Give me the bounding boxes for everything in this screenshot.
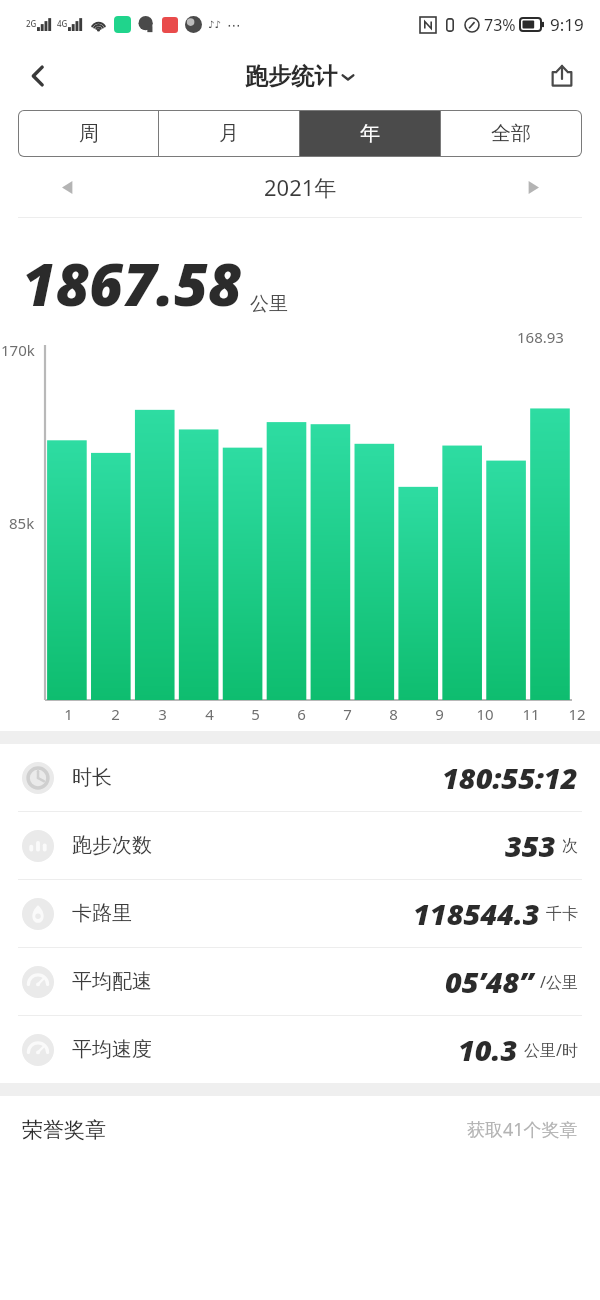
staticText: 月 xyxy=(219,121,239,146)
staticText: 获取41个奖章 xyxy=(467,1117,578,1142)
staticText: 11 xyxy=(522,704,540,724)
staticText: 10.3 xyxy=(458,1030,518,1069)
staticText: 3 xyxy=(158,704,167,724)
staticText: 4 xyxy=(205,704,214,724)
staticText: 1 xyxy=(64,704,73,724)
staticText: 118544.3 xyxy=(413,894,540,933)
button[interactable]: Previous year xyxy=(48,167,88,207)
button[interactable]: 平均速度 xyxy=(0,1016,600,1083)
staticText: 4G xyxy=(57,18,68,29)
staticText: 353 xyxy=(505,826,556,865)
staticText: 卡路里 xyxy=(72,901,132,926)
button[interactable]: 跑步统计 xyxy=(245,62,355,91)
button[interactable]: 时长 xyxy=(0,744,600,811)
staticText: 2 xyxy=(111,704,120,724)
button[interactable]: 平均配速 xyxy=(0,948,600,1015)
staticText: 168.93 xyxy=(517,327,564,347)
staticText: ⋯ xyxy=(227,17,241,33)
button[interactable]: Next year xyxy=(512,167,552,207)
button[interactable]: Share xyxy=(538,52,586,100)
staticText: 5 xyxy=(251,704,260,724)
staticText: /公里 xyxy=(540,971,578,993)
staticText: 12 xyxy=(568,704,586,724)
button[interactable]: 年 xyxy=(300,111,440,156)
button[interactable]: Back xyxy=(14,52,62,100)
staticText: 05’48” xyxy=(445,962,534,1001)
staticText: 1867.58 xyxy=(22,244,242,323)
staticText: 170k xyxy=(1,340,35,360)
staticText: 7 xyxy=(343,704,352,724)
staticText: 9 xyxy=(435,704,444,724)
button[interactable]: 全部 xyxy=(441,111,581,156)
button[interactable]: 卡路里 xyxy=(0,880,600,947)
staticText: 次 xyxy=(562,836,578,856)
button[interactable]: 月 xyxy=(159,111,299,156)
staticText: 6 xyxy=(297,704,306,724)
staticText: 跑步次数 xyxy=(72,833,152,858)
staticText: 2021年 xyxy=(264,172,337,202)
staticText: 180:55:12 xyxy=(442,758,578,797)
staticText: 85k xyxy=(9,513,35,533)
staticText: 公里/时 xyxy=(524,1039,578,1061)
staticText: 73% xyxy=(484,14,516,36)
button[interactable]: 跑步次数 xyxy=(0,812,600,879)
staticText: 8 xyxy=(389,704,398,724)
staticText: 年 xyxy=(360,121,380,146)
staticText: 平均速度 xyxy=(72,1037,152,1062)
staticText: 周 xyxy=(79,121,99,146)
staticText: 荣誉奖章 xyxy=(22,1117,106,1143)
staticText: 9:19 xyxy=(550,13,584,36)
staticText: 千卡 xyxy=(546,904,578,924)
staticText: 10 xyxy=(476,704,494,724)
staticText: 2G xyxy=(26,18,37,29)
staticText: 平均配速 xyxy=(72,969,152,994)
staticText: 时长 xyxy=(72,765,112,790)
staticText: 公里 xyxy=(250,292,288,316)
button[interactable]: 周 xyxy=(19,111,158,156)
staticText: 全部 xyxy=(491,121,531,146)
button[interactable]: 荣誉奖章 xyxy=(0,1096,600,1163)
staticText: ♪♪ xyxy=(208,19,221,31)
staticText: 跑步统计 xyxy=(245,62,337,91)
